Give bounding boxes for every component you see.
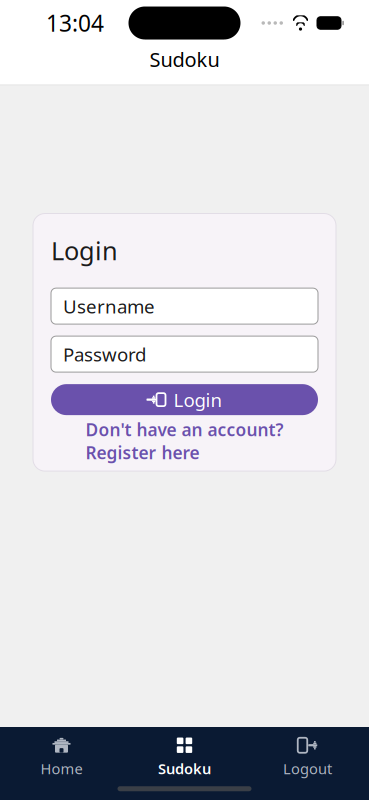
button[interactable]: Don't have an account? Register here — [51, 431, 318, 451]
button[interactable]: Logout — [246, 727, 369, 786]
staticText: Password — [63, 342, 146, 366]
staticText: Login — [173, 387, 222, 412]
staticText: 13:04 — [46, 8, 104, 38]
button[interactable]: Login — [51, 384, 318, 415]
staticText: Username — [63, 294, 155, 318]
button[interactable]: Home — [0, 727, 123, 786]
staticText: Sudoku — [158, 759, 211, 778]
staticText: Login — [51, 233, 118, 267]
staticText: Sudoku — [149, 46, 219, 73]
button[interactable]: Sudoku — [123, 727, 246, 786]
staticText: Don't have an account? Register here — [85, 418, 283, 464]
staticText: Logout — [283, 759, 332, 778]
staticText: Home — [40, 759, 82, 778]
